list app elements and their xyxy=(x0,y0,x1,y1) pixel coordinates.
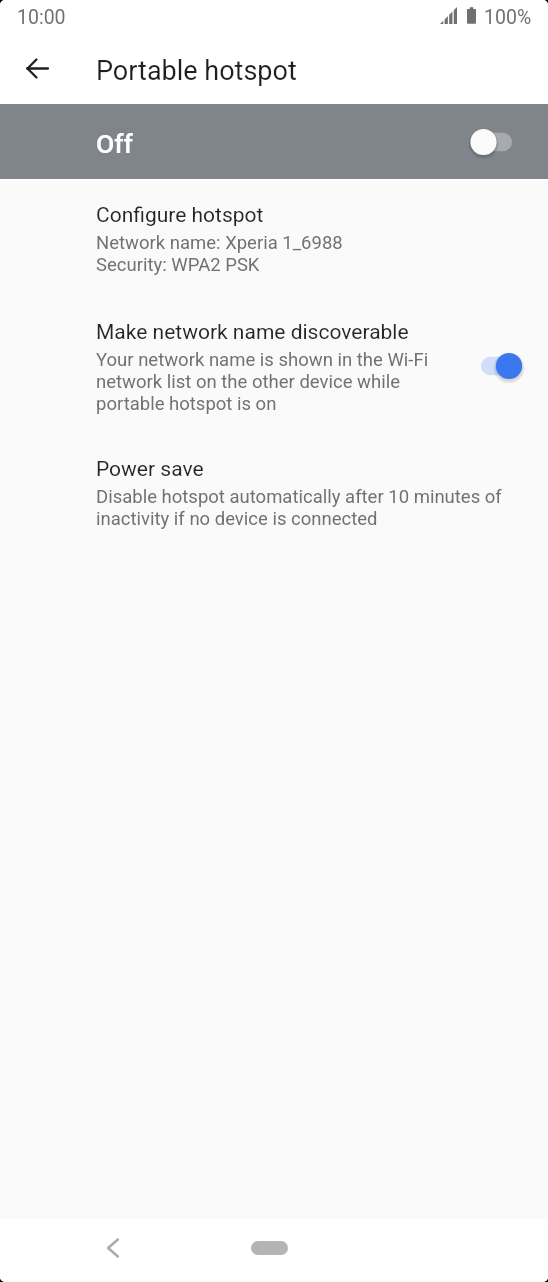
staticText: 10:00 xyxy=(17,6,66,29)
staticText: Configure hotspot xyxy=(96,200,264,228)
staticText: Portable hotspot xyxy=(96,55,297,87)
staticText: network list on the other device while xyxy=(96,370,400,392)
button[interactable]: Configure hotspot xyxy=(0,181,548,296)
staticText: 100% xyxy=(484,6,532,29)
staticText: inactivity if no device is connected xyxy=(96,507,378,529)
staticText: portable hotspot is on xyxy=(96,392,277,414)
button[interactable]: Home xyxy=(237,1228,301,1268)
button[interactable]: Turn on portable hotspot xyxy=(464,122,528,162)
button[interactable]: Make network name discoverable xyxy=(464,346,528,386)
staticText: Off xyxy=(96,128,133,159)
button[interactable]: Back xyxy=(89,1224,137,1272)
staticText: Power save xyxy=(96,454,204,482)
staticText: Make network name discoverable xyxy=(96,317,409,345)
staticText: Disable hotspot automatically after 10 m… xyxy=(96,485,502,507)
button[interactable]: Power save xyxy=(0,434,548,551)
button[interactable]: Make network name discoverable xyxy=(0,296,548,434)
staticText: Network name: Xperia 1_6988 xyxy=(96,231,343,253)
button[interactable]: Navigate up xyxy=(13,44,61,92)
staticText: Security: WPA2 PSK xyxy=(96,253,260,275)
button[interactable]: Off xyxy=(0,104,548,179)
staticText: Your network name is shown in the Wi-Fi xyxy=(96,348,429,370)
